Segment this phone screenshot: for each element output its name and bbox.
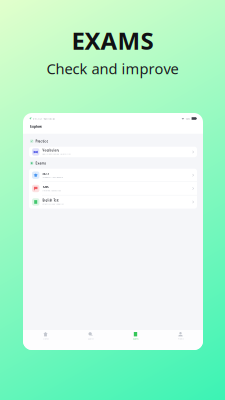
staticText: Build and review word lists bbox=[42, 153, 71, 155]
staticText: Check and improve bbox=[46, 59, 178, 79]
button[interactable]: Search bbox=[68, 330, 113, 350]
button[interactable]: TOEFL bbox=[29, 182, 197, 195]
staticText: Explore bbox=[30, 124, 42, 129]
staticText: Exams bbox=[132, 337, 138, 340]
staticText: Academic and General bbox=[42, 176, 63, 178]
staticText: Profile bbox=[177, 337, 183, 340]
staticText: Exams bbox=[35, 161, 46, 165]
staticText: Search bbox=[87, 337, 93, 340]
button[interactable]: IELTS bbox=[29, 169, 197, 182]
button[interactable]: English Test bbox=[29, 195, 197, 209]
staticText: English Test bbox=[42, 199, 58, 202]
staticText: Practice bbox=[35, 139, 48, 143]
button[interactable]: Vocabulary bbox=[29, 147, 197, 157]
staticText: Vocabulary bbox=[42, 149, 58, 152]
staticText: IELTS bbox=[42, 172, 48, 175]
staticText: Home bbox=[42, 337, 48, 340]
staticText: 100% bbox=[185, 117, 190, 120]
staticText: EXAMS bbox=[71, 24, 153, 57]
staticText: 9:41 AM Tue Nov 30 bbox=[33, 117, 55, 120]
button[interactable]: Home bbox=[23, 330, 68, 350]
button[interactable]: Profile bbox=[158, 330, 203, 350]
button[interactable]: Exams bbox=[113, 330, 158, 350]
staticText: Practice your English bbox=[42, 203, 63, 205]
staticText: TOEFL bbox=[42, 185, 48, 189]
staticText: Internet based test bbox=[42, 189, 61, 192]
